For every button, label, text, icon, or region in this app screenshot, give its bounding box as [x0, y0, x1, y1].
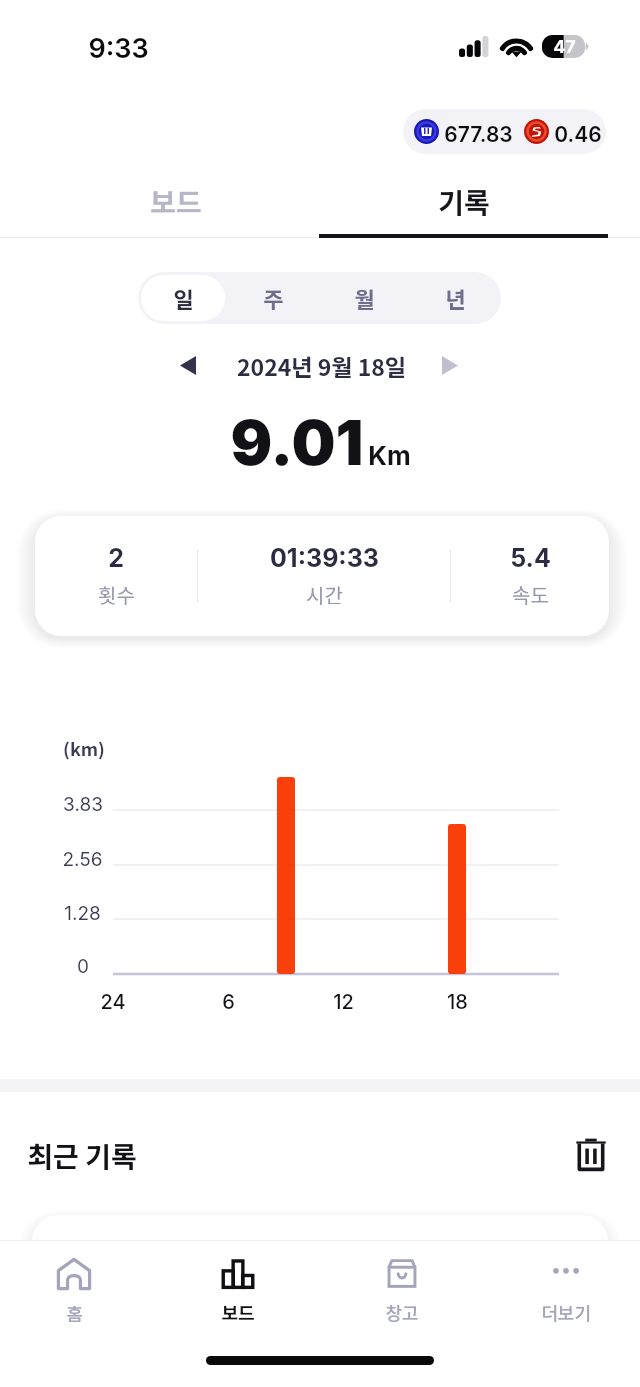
staticText: 주: [263, 282, 284, 314]
staticText: 보드: [150, 181, 202, 222]
staticText: 6: [222, 990, 235, 1014]
staticText: 속도: [512, 580, 549, 609]
staticText: 더보기: [541, 1299, 591, 1325]
staticText: 3.83: [63, 793, 103, 816]
staticText: 창고: [385, 1299, 419, 1325]
button[interactable]: 더보기: [525, 1248, 607, 1334]
button[interactable]: 일: [141, 275, 225, 321]
staticText: 9:33: [88, 32, 149, 65]
staticText: 년: [445, 282, 466, 314]
staticText: 기록: [438, 181, 490, 222]
button[interactable]: 창고: [361, 1248, 443, 1334]
staticText: 18: [447, 990, 468, 1014]
button[interactable]: 월: [322, 275, 407, 321]
button[interactable]: 5.4: [451, 543, 609, 609]
staticText: (km): [63, 735, 105, 761]
button[interactable]: 년: [413, 275, 498, 321]
staticText: 0: [77, 955, 89, 978]
staticText: 677.83: [444, 122, 513, 147]
staticText: 0.46: [554, 122, 602, 147]
button[interactable]: 기록: [320, 170, 608, 232]
staticText: 5.4: [510, 543, 551, 573]
staticText: Km: [368, 440, 411, 471]
button[interactable]: 주: [231, 275, 316, 321]
staticText: 1.28: [64, 902, 101, 925]
button[interactable]: 2: [35, 543, 197, 609]
button[interactable]: 보드: [32, 170, 320, 232]
button[interactable]: 홈: [33, 1248, 115, 1334]
button[interactable]: 보드: [197, 1248, 279, 1334]
staticText: 2024년 9월 18일: [237, 349, 406, 382]
staticText: 횟수: [98, 580, 135, 609]
staticText: 2: [108, 543, 124, 573]
staticText: 월: [354, 282, 375, 314]
staticText: 최근 기록: [27, 1135, 137, 1176]
staticText: 2.56: [62, 848, 103, 871]
staticText: 47: [553, 36, 576, 58]
staticText: 일: [173, 282, 194, 314]
button[interactable]: 677.83: [403, 109, 606, 154]
staticText: 보드: [221, 1299, 255, 1325]
staticText: 시간: [306, 580, 343, 609]
button[interactable]: Next day: [430, 345, 470, 385]
staticText: 01:39:33: [270, 543, 379, 573]
staticText: 12: [333, 990, 354, 1014]
staticText: 홈: [66, 1300, 83, 1326]
button[interactable]: Delete records: [564, 1127, 618, 1181]
button[interactable]: 01:39:33: [198, 543, 450, 609]
staticText: 9.01: [230, 405, 364, 480]
button[interactable]: Previous day: [168, 345, 208, 385]
staticText: 24: [100, 990, 126, 1014]
